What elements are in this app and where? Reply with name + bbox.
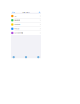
button[interactable]: Settings [36, 58, 40, 63]
button[interactable]: Focus [11, 27, 41, 31]
button[interactable]: Bluetooth [11, 18, 41, 22]
button[interactable]: Back [11, 4, 15, 15]
button[interactable]: Home [12, 58, 15, 63]
staticText: Notifications [22, 12, 30, 13]
staticText: Screen Time [14, 32, 23, 34]
staticText: Wi-Fi [14, 15, 16, 17]
button[interactable]: Wi-Fi [11, 14, 41, 18]
button[interactable]: Search [24, 58, 28, 63]
staticText: Sounds [14, 24, 20, 25]
button[interactable]: Add [38, 4, 41, 15]
staticText: Bluetooth [14, 19, 20, 21]
button[interactable]: Sounds [11, 22, 41, 27]
staticText: Focus [14, 28, 19, 30]
button[interactable]: Screen Time [11, 31, 41, 35]
